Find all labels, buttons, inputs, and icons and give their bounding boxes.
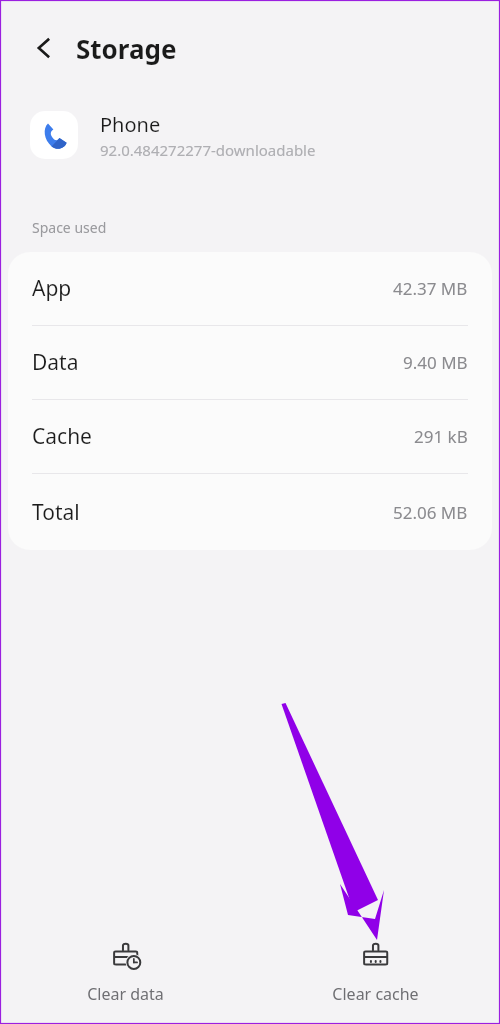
staticText: Cache	[32, 422, 92, 451]
button[interactable]: Clear data	[0, 932, 250, 1013]
button[interactable]: Phone	[0, 96, 500, 174]
button[interactable]: Clear cache	[250, 932, 500, 1013]
staticText: 42.37 MB	[393, 277, 468, 300]
staticText: 92.0.484272277-downloadable	[100, 140, 316, 160]
button[interactable]: Total	[8, 474, 492, 550]
button[interactable]: App	[8, 252, 492, 325]
staticText: Clear data	[87, 983, 164, 1005]
staticText: Clear cache	[332, 983, 419, 1005]
staticText: 291 kB	[414, 425, 468, 448]
staticText: Storage	[76, 31, 177, 66]
button[interactable]: Back	[22, 26, 66, 70]
button[interactable]: Cache	[8, 400, 492, 473]
staticText: Phone	[100, 111, 161, 138]
staticText: Data	[32, 348, 79, 377]
staticText: App	[32, 274, 72, 303]
button[interactable]: Data	[8, 326, 492, 399]
staticText: Space used	[32, 218, 107, 237]
staticText: 52.06 MB	[393, 501, 468, 524]
staticText: 9.40 MB	[403, 351, 468, 374]
staticText: Total	[32, 498, 80, 527]
